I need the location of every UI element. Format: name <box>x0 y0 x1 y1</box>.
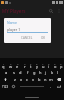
staticText: r <box>24 64 26 69</box>
staticText: g <box>33 70 36 75</box>
button[interactable]: Emoji <box>10 83 16 90</box>
button[interactable]: f <box>24 69 31 76</box>
button[interactable]: Backspace <box>54 76 64 83</box>
button[interactable]: s <box>10 69 17 76</box>
button[interactable]: 6 <box>34 62 40 69</box>
button[interactable]: z <box>11 76 18 83</box>
button[interactable]: l <box>55 69 61 76</box>
staticText: . <box>50 84 52 89</box>
button[interactable]: v <box>30 76 36 83</box>
button[interactable]: m <box>48 76 54 83</box>
staticText: u <box>42 64 45 69</box>
staticText: f <box>27 70 29 75</box>
staticText: q <box>2 64 5 69</box>
staticText: y <box>36 64 39 69</box>
button[interactable]: k <box>49 69 55 76</box>
staticText: s <box>13 70 15 75</box>
button[interactable]: 3 <box>14 62 21 69</box>
button[interactable]: j <box>43 69 49 76</box>
staticText: d <box>19 70 22 75</box>
staticText: 5 <box>30 62 32 65</box>
staticText: 3 <box>17 62 19 65</box>
button[interactable]: Enter <box>54 83 64 90</box>
staticText: 8 <box>48 62 50 65</box>
button[interactable]: 5 <box>28 62 34 69</box>
button[interactable]: Search <box>47 7 55 15</box>
staticText: a <box>5 70 8 75</box>
button[interactable]: 1 <box>0 62 7 69</box>
staticText: l <box>57 70 59 75</box>
staticText: MY Players <box>2 8 26 14</box>
staticText: e <box>16 64 19 69</box>
button[interactable]: 0 <box>58 62 64 69</box>
button[interactable]: ?123 <box>0 83 10 90</box>
button[interactable]: n <box>42 76 48 83</box>
staticText: b <box>38 77 41 82</box>
staticText: m <box>49 77 53 82</box>
button[interactable]: 7 <box>40 62 46 69</box>
button[interactable]: Space <box>16 83 48 90</box>
button[interactable]: g <box>31 69 37 76</box>
button[interactable]: d <box>17 69 24 76</box>
button[interactable]: x <box>18 76 24 83</box>
button[interactable]: CANCEL <box>19 35 35 41</box>
button[interactable]: 2 <box>7 62 14 69</box>
staticText: 6 <box>36 62 38 65</box>
staticText: t <box>30 64 32 69</box>
staticText: p <box>60 64 63 69</box>
staticText: 4 <box>24 62 26 65</box>
staticText: 9 <box>54 62 56 65</box>
staticText: 7 <box>42 62 44 65</box>
staticText: 1 <box>3 62 5 65</box>
staticText: o <box>54 64 57 69</box>
staticText: player 1 <box>7 27 21 32</box>
staticText: CANCEL <box>21 36 33 40</box>
button[interactable]: b <box>36 76 42 83</box>
staticText: n <box>44 77 47 82</box>
button[interactable]: . <box>48 83 54 90</box>
button[interactable]: h <box>37 69 43 76</box>
staticText: ?123 <box>2 85 9 89</box>
button[interactable]: a <box>3 69 10 76</box>
staticText: i <box>48 64 50 69</box>
staticText: w <box>9 64 13 69</box>
button[interactable]: Shift <box>0 76 11 83</box>
button[interactable]: OK <box>39 35 48 41</box>
staticText: z <box>14 77 16 82</box>
staticText: k <box>51 70 54 75</box>
staticText: 0 <box>60 62 62 65</box>
staticText: v <box>32 77 35 82</box>
button[interactable]: 8 <box>46 62 52 69</box>
staticText: x <box>20 77 23 82</box>
staticText: OK <box>41 36 46 40</box>
staticText: Name <box>7 20 17 25</box>
staticText: j <box>45 70 47 75</box>
staticText: c <box>26 77 28 82</box>
button[interactable]: c <box>24 76 30 83</box>
staticText: 2 <box>10 62 12 65</box>
button[interactable]: 9 <box>52 62 58 69</box>
button[interactable]: 4 <box>21 62 28 69</box>
staticText: h <box>39 70 42 75</box>
